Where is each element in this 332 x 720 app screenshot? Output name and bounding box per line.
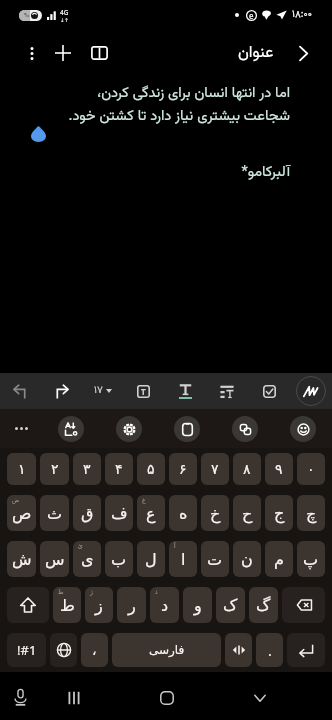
- button[interactable]: ص: [7, 495, 36, 531]
- staticText: ۱۷: [94, 383, 103, 399]
- button[interactable]: ق: [73, 495, 101, 531]
- button[interactable]: گ: [249, 587, 278, 623]
- staticText: پ: [303, 550, 319, 569]
- staticText: ز: [95, 596, 103, 615]
- button[interactable]: Reading mode: [84, 38, 114, 68]
- button[interactable]: ف: [105, 495, 133, 531]
- staticText: ق: [81, 504, 94, 523]
- button[interactable]: Shift: [7, 587, 49, 623]
- staticText: ذ: [155, 588, 158, 595]
- staticText: .: [268, 641, 272, 660]
- button[interactable]: Translate: [42, 409, 100, 448]
- button[interactable]: .: [256, 633, 283, 667]
- staticText: آلبرکامو*: [14, 161, 290, 184]
- button[interactable]: Add note: [48, 38, 78, 68]
- button[interactable]: Back: [289, 39, 317, 67]
- staticText: ۲: [51, 461, 59, 477]
- button[interactable]: ۲: [40, 453, 69, 485]
- button[interactable]: ط: [53, 587, 81, 623]
- staticText: ط: [60, 596, 75, 615]
- button[interactable]: Move cursor: [225, 633, 252, 667]
- button[interactable]: Handwriting: [290, 373, 332, 409]
- staticText: ۵: [147, 461, 155, 477]
- button[interactable]: ح: [233, 495, 261, 531]
- button[interactable]: Voice input: [6, 683, 34, 711]
- button[interactable]: Hide keyboard: [245, 683, 274, 712]
- button[interactable]: و: [183, 587, 212, 623]
- staticText: آ: [174, 542, 176, 549]
- staticText: و: [194, 596, 202, 615]
- button[interactable]: د: [150, 587, 179, 623]
- button[interactable]: Backspace: [282, 587, 325, 623]
- button[interactable]: Underline: [164, 373, 206, 409]
- button[interactable]: پ: [297, 541, 325, 577]
- staticText: ن: [241, 550, 253, 569]
- staticText: ل: [145, 550, 157, 569]
- staticText: ژ: [90, 588, 93, 595]
- button[interactable]: ل: [137, 541, 165, 577]
- button[interactable]: More options: [18, 40, 45, 67]
- button[interactable]: فارسی: [112, 633, 221, 667]
- button[interactable]: ک: [216, 587, 245, 623]
- button[interactable]: ج: [265, 495, 293, 531]
- staticText: ف: [111, 504, 128, 523]
- button[interactable]: ع: [137, 495, 165, 531]
- button[interactable]: س: [40, 541, 69, 577]
- button[interactable]: Clipboard: [158, 409, 216, 448]
- button[interactable]: ن: [233, 541, 261, 577]
- button[interactable]: Undo: [0, 373, 41, 409]
- staticText: عنوان: [238, 41, 274, 66]
- staticText: ص: [12, 504, 32, 523]
- button[interactable]: ه: [169, 495, 197, 531]
- button[interactable]: ۷: [201, 453, 229, 485]
- button[interactable]: Settings: [100, 409, 158, 448]
- button[interactable]: ۴: [105, 453, 133, 485]
- button[interactable]: Home: [152, 683, 181, 712]
- button[interactable]: ا: [169, 541, 197, 577]
- staticText: e: [249, 10, 254, 21]
- button[interactable]: ۵: [137, 453, 165, 485]
- button[interactable]: ر: [117, 587, 146, 623]
- staticText: ۱: [18, 461, 26, 477]
- staticText: ،: [92, 642, 97, 658]
- staticText: 4G: [60, 8, 69, 17]
- button[interactable]: Checklist: [248, 373, 290, 409]
- button[interactable]: Paragraph style: [206, 373, 248, 409]
- button[interactable]: More: [0, 409, 42, 448]
- staticText: ۱۸:۰۰: [292, 7, 312, 23]
- button[interactable]: ت: [201, 541, 229, 577]
- button[interactable]: م: [265, 541, 293, 577]
- button[interactable]: Text box: [123, 373, 164, 409]
- button[interactable]: ث: [40, 495, 69, 531]
- staticText: شجاعت بیشتری نیاز دارد تا کشتن خود.: [14, 105, 290, 128]
- button[interactable]: Emoji: [274, 409, 332, 448]
- staticText: ۷: [211, 461, 219, 477]
- staticText: ئ: [78, 542, 83, 549]
- staticText: ۹: [275, 461, 283, 477]
- button[interactable]: ب: [105, 541, 133, 577]
- button[interactable]: Redo: [41, 373, 82, 409]
- button[interactable]: ۱۷: [82, 373, 123, 409]
- button[interactable]: ۶: [169, 453, 197, 485]
- staticText: ش: [12, 550, 32, 569]
- button[interactable]: ۹: [265, 453, 293, 485]
- button[interactable]: Translate text: [216, 409, 274, 448]
- button[interactable]: ۱: [7, 453, 36, 485]
- button[interactable]: !#1: [7, 633, 46, 667]
- button[interactable]: ی: [73, 541, 101, 577]
- button[interactable]: ،: [81, 633, 108, 667]
- staticText: ج: [274, 504, 285, 523]
- button[interactable]: ۰: [297, 453, 325, 485]
- staticText: چ: [306, 504, 317, 523]
- button[interactable]: Recent apps: [59, 683, 88, 712]
- button[interactable]: ۳: [73, 453, 101, 485]
- button[interactable]: چ: [297, 495, 325, 531]
- button[interactable]: خ: [201, 495, 229, 531]
- button[interactable]: Switch language: [50, 633, 77, 667]
- button[interactable]: ۸: [233, 453, 261, 485]
- button[interactable]: Enter: [287, 633, 325, 667]
- staticText: غ: [142, 496, 146, 503]
- button[interactable]: ش: [7, 541, 36, 577]
- button[interactable]: ز: [85, 587, 113, 623]
- staticText: ۶: [179, 461, 187, 477]
